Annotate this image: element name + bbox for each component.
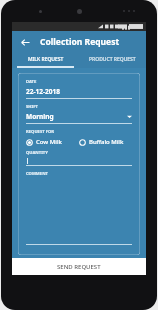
button[interactable]: Back [17,34,33,50]
staticText: REQUEST FOR [26,129,55,135]
button[interactable] [26,177,132,255]
staticText: Buffalo Milk [89,138,124,146]
staticText: MILK REQUEST [28,56,64,63]
staticText: 22-12-2018 [26,87,60,96]
staticText: QUANTITY [26,150,48,156]
button[interactable]: Cow Milk [26,138,79,146]
staticText: Collection Request [40,36,120,48]
staticText: COMMENT [26,171,48,177]
button[interactable]: Morning [26,112,132,121]
staticText: Morning [26,112,54,121]
staticText: PRODUCT REQUEST [89,56,136,63]
button[interactable] [26,157,132,165]
staticText: SEND REQUEST [57,263,101,271]
button[interactable]: SEND REQUEST [12,258,146,275]
button[interactable]: Buffalo Milk [79,138,132,146]
button[interactable]: PRODUCT REQUEST [79,52,146,66]
staticText: DATE [26,79,37,85]
button[interactable]: MILK REQUEST [12,52,79,66]
staticText: SHIFT [26,104,38,110]
staticText: Cow Milk [36,138,62,146]
